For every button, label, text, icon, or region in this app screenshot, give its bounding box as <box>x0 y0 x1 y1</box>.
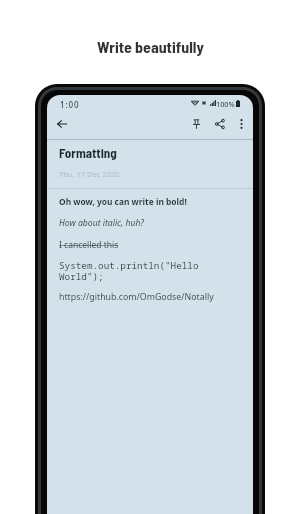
button[interactable]: Pin note <box>185 113 207 135</box>
staticText: Oh wow, you can write in bold! <box>59 196 187 207</box>
staticText: Write beautifully <box>97 37 204 56</box>
staticText: Formatting <box>59 145 117 161</box>
staticText: I cancelled this <box>59 239 119 251</box>
button[interactable]: Share note <box>209 113 231 135</box>
staticText: https://github.com/OmGodse/Notally <box>59 291 214 303</box>
staticText: 1:00 <box>60 99 80 110</box>
staticText: Thu, 17 Dec 2020 <box>59 169 120 179</box>
button[interactable]: More options <box>230 113 252 135</box>
staticText: 100% <box>216 99 235 109</box>
staticText: How about italic, huh? <box>59 217 145 229</box>
staticText: System.out.println("Hello World"); <box>59 259 201 282</box>
button[interactable]: Navigate back <box>51 113 73 135</box>
